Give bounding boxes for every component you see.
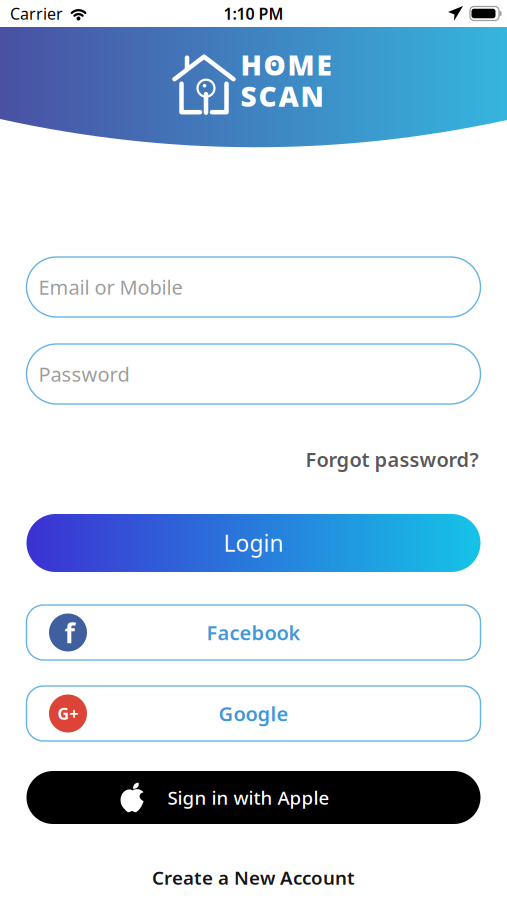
staticText: Carrier xyxy=(10,3,63,24)
staticText: Password xyxy=(38,361,129,387)
button[interactable]: Email or Mobile xyxy=(26,257,480,317)
staticText: Login xyxy=(223,528,283,558)
staticText: Forgot password? xyxy=(305,446,478,473)
button[interactable]: G+ xyxy=(26,686,480,741)
staticText: G+ xyxy=(57,703,78,724)
button[interactable]: f xyxy=(26,605,480,660)
button[interactable]: Password xyxy=(26,344,480,404)
staticText: Facebook xyxy=(206,619,300,646)
staticText: 1:10 PM xyxy=(223,3,283,24)
button[interactable]: Forgot password? xyxy=(305,446,478,473)
button[interactable]: Create a New Account xyxy=(152,865,355,890)
staticText: SCAN xyxy=(240,77,323,114)
staticText: HOME xyxy=(240,46,331,83)
button[interactable]: Sign in with Apple xyxy=(26,771,480,824)
staticText: Create a New Account xyxy=(152,865,355,890)
staticText: f xyxy=(64,615,74,651)
staticText: Sign in with Apple xyxy=(167,785,329,810)
staticText: Google xyxy=(218,700,288,727)
staticText: Email or Mobile xyxy=(38,274,182,300)
button[interactable]: Login xyxy=(26,514,480,572)
